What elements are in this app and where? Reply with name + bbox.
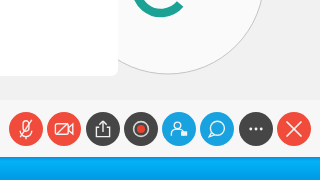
button[interactable]: Share screen [86, 112, 120, 146]
button[interactable]: Turn off camera [47, 112, 81, 146]
button[interactable]: Record [124, 112, 158, 146]
button[interactable]: Mute microphone [9, 112, 43, 146]
button[interactable]: More options [239, 112, 273, 146]
button[interactable]: End call [277, 112, 311, 146]
button[interactable]: Participants [162, 112, 196, 146]
button[interactable]: Chat [200, 112, 234, 146]
